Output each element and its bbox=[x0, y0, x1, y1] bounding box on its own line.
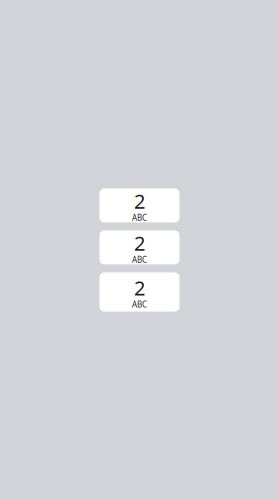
staticText: ABC bbox=[132, 254, 147, 265]
staticText: 2 bbox=[134, 274, 145, 301]
staticText: 2 bbox=[134, 188, 145, 214]
staticText: 2 bbox=[134, 230, 145, 256]
staticText: ABC bbox=[132, 212, 147, 223]
staticText: ABC bbox=[132, 299, 147, 310]
